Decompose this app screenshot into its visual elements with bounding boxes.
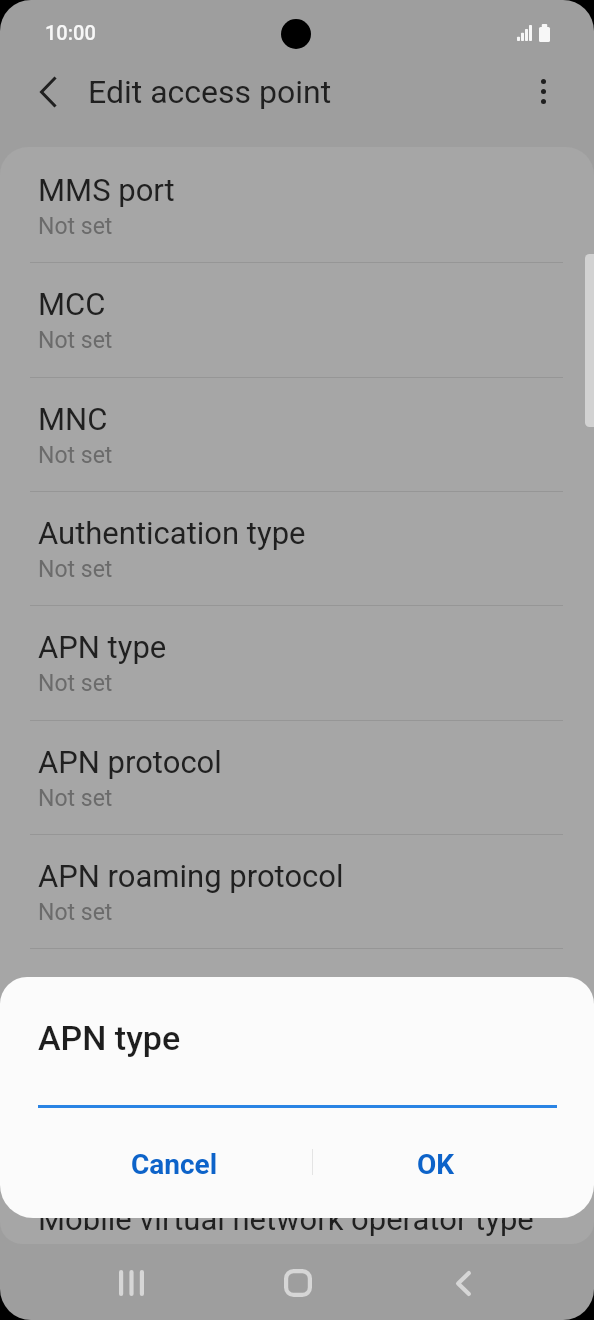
button[interactable]: MMS port [0, 149, 594, 263]
staticText: 10:00 [45, 21, 96, 44]
staticText: Not set [38, 442, 113, 469]
staticText: Authentication type [38, 515, 306, 551]
button[interactable]: APN type [0, 606, 594, 720]
staticText: Not set [38, 556, 113, 583]
staticText: APN type [38, 629, 167, 665]
button[interactable]: Authentication type [0, 492, 594, 606]
staticText: Edit access point [88, 73, 332, 111]
staticText: Not set [38, 1013, 113, 1040]
button[interactable]: Navigate up [20, 76, 77, 133]
staticText: Bearer [38, 972, 128, 1008]
button[interactable]: OK [305, 1135, 567, 1193]
button[interactable]: Cancel [43, 1135, 305, 1193]
staticText: MCC [38, 286, 106, 322]
staticText: Not set [38, 785, 113, 812]
button[interactable]: APN roaming protocol [0, 835, 594, 949]
staticText: OK [417, 1148, 455, 1181]
staticText: APN type [38, 1018, 181, 1058]
button[interactable]: MNC [0, 378, 594, 492]
button[interactable]: Mobile virtual network operator type [0, 1178, 594, 1244]
staticText: MMS port [38, 172, 175, 208]
staticText: Not set [38, 670, 113, 697]
staticText: MVNO type [38, 1086, 195, 1122]
button[interactable]: Bearer [0, 949, 594, 1063]
button[interactable]: Back [428, 1244, 508, 1316]
staticText: APN roaming protocol [38, 858, 344, 894]
button[interactable]: MVNO type [0, 1063, 594, 1177]
staticText: Cancel [131, 1148, 218, 1181]
staticText: Mobile virtual network operator type [38, 1201, 534, 1237]
button[interactable]: Recent apps [91, 1244, 171, 1316]
staticText: MNC [38, 401, 108, 437]
staticText: Not set [38, 327, 113, 354]
staticText: Not set [38, 899, 113, 926]
button[interactable]: Home [256, 1244, 336, 1316]
staticText: Not set [38, 213, 113, 240]
button[interactable]: APN protocol [0, 721, 594, 835]
button[interactable]: MCC [0, 263, 594, 377]
button[interactable]: More options [516, 76, 572, 132]
staticText: APN protocol [38, 744, 222, 780]
